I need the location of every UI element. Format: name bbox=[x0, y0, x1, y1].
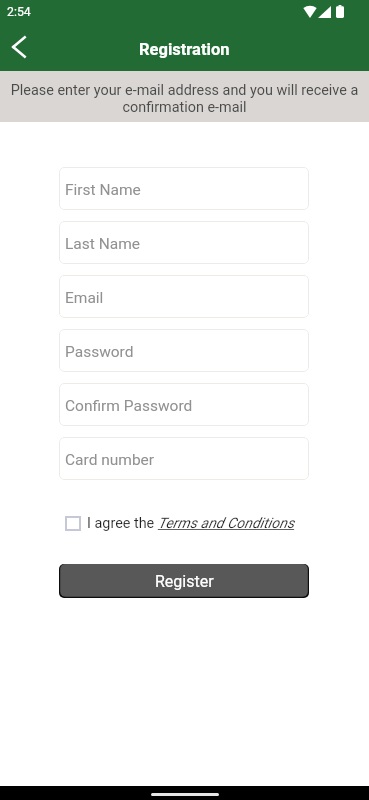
button[interactable]: Back bbox=[0, 26, 40, 68]
staticText: Confirm Password bbox=[65, 397, 193, 415]
staticText: Register bbox=[155, 572, 214, 591]
button[interactable]: I agree the Terms and Conditions bbox=[59, 512, 309, 534]
button[interactable]: Card number bbox=[59, 437, 309, 480]
button[interactable]: Register bbox=[59, 564, 309, 598]
staticText: Card number bbox=[65, 451, 155, 469]
staticText: First Name bbox=[65, 181, 141, 199]
staticText: I agree the Terms and Conditions bbox=[87, 515, 295, 532]
staticText: Registration bbox=[139, 40, 230, 59]
staticText: Please enter your e-mail address and you… bbox=[8, 82, 361, 116]
button[interactable]: Password bbox=[59, 329, 309, 372]
button[interactable]: Confirm Password bbox=[59, 383, 309, 426]
staticText: Password bbox=[65, 343, 134, 361]
button[interactable]: Last Name bbox=[59, 221, 309, 264]
staticText: Email bbox=[65, 289, 104, 307]
button[interactable]: First Name bbox=[59, 167, 309, 210]
button[interactable]: Email bbox=[59, 275, 309, 318]
staticText: 2:54 bbox=[7, 5, 31, 19]
staticText: Last Name bbox=[65, 235, 140, 253]
